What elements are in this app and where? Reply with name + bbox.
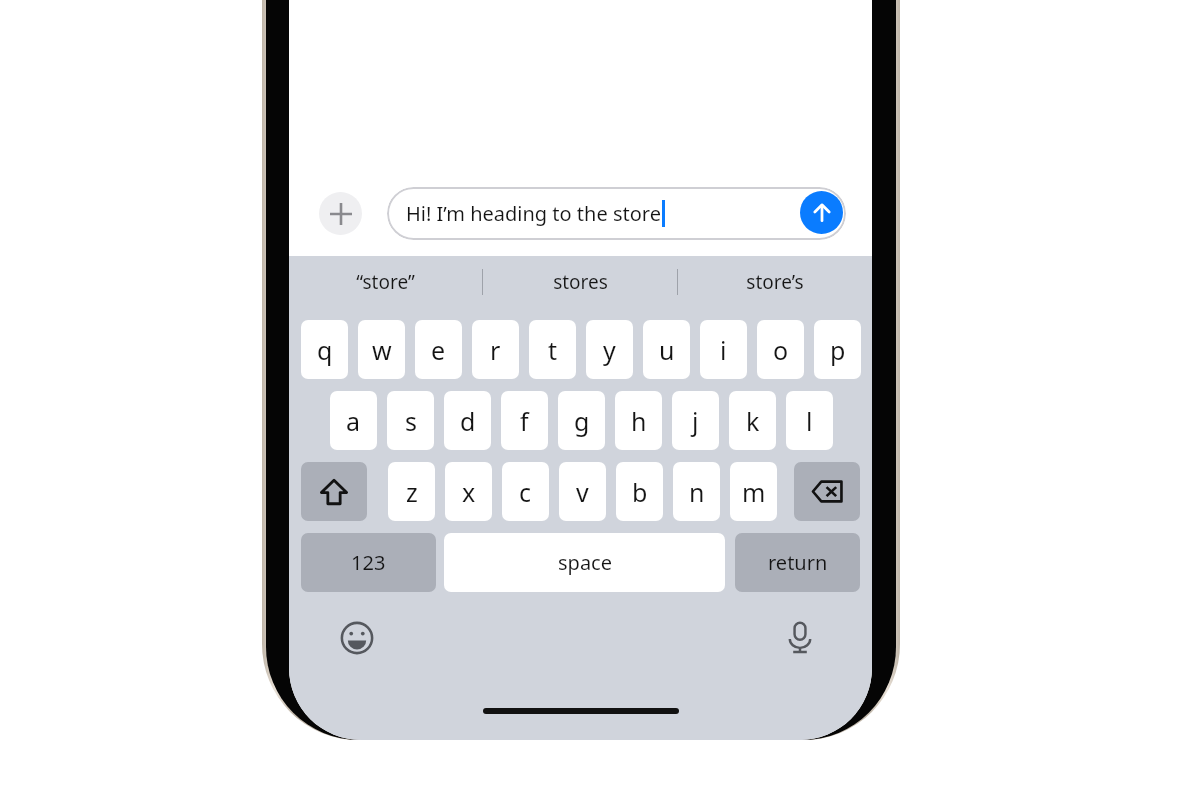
button[interactable]: Dictation	[779, 616, 821, 658]
button[interactable]: j	[672, 391, 719, 450]
button[interactable]: store’s	[678, 256, 872, 308]
staticText: d	[460, 404, 476, 438]
button[interactable]: “store”	[289, 256, 482, 308]
staticText: i	[720, 333, 727, 367]
button[interactable]: t	[529, 320, 576, 379]
staticText: m	[742, 475, 766, 509]
button[interactable]: e	[415, 320, 462, 379]
button[interactable]: z	[388, 462, 435, 521]
button[interactable]: y	[586, 320, 633, 379]
button[interactable]: d	[444, 391, 491, 450]
staticText: r	[490, 333, 501, 367]
button[interactable]: f	[501, 391, 548, 450]
staticText: stores	[553, 269, 608, 295]
button[interactable]: m	[730, 462, 777, 521]
staticText: w	[372, 333, 392, 367]
button[interactable]: p	[814, 320, 861, 379]
staticText: space	[558, 549, 612, 576]
button[interactable]: h	[615, 391, 662, 450]
button[interactable]: v	[559, 462, 606, 521]
staticText: z	[406, 475, 418, 509]
button[interactable]: Hi! I’m heading to the store	[387, 187, 846, 240]
button[interactable]: Add attachment	[319, 192, 362, 235]
button[interactable]: q	[301, 320, 348, 379]
staticText: g	[574, 404, 590, 438]
button[interactable]: b	[616, 462, 663, 521]
button[interactable]: w	[358, 320, 405, 379]
button[interactable]: Send	[800, 191, 843, 234]
button[interactable]: k	[729, 391, 776, 450]
staticText: store’s	[746, 269, 804, 295]
button[interactable]: u	[643, 320, 690, 379]
button[interactable]: space	[444, 533, 725, 592]
staticText: v	[576, 475, 589, 509]
button[interactable]: stores	[483, 256, 677, 308]
staticText: s	[405, 404, 417, 438]
button[interactable]: s	[387, 391, 434, 450]
button[interactable]: g	[558, 391, 605, 450]
button[interactable]: Shift	[301, 462, 367, 521]
staticText: x	[462, 475, 476, 509]
staticText: “store”	[356, 269, 415, 295]
staticText: j	[692, 404, 699, 438]
staticText: return	[768, 549, 828, 576]
button[interactable]: Backspace	[794, 462, 860, 521]
button[interactable]: 123	[301, 533, 436, 592]
staticText: k	[746, 404, 760, 438]
staticText: o	[773, 333, 789, 367]
button[interactable]: r	[472, 320, 519, 379]
staticText: c	[519, 475, 532, 509]
staticText: 123	[351, 549, 386, 576]
staticText: b	[632, 475, 648, 509]
staticText: a	[346, 404, 361, 438]
staticText: u	[659, 333, 675, 367]
staticText: q	[317, 333, 333, 367]
button[interactable]: c	[502, 462, 549, 521]
staticText: p	[830, 333, 846, 367]
staticText: y	[603, 333, 616, 367]
staticText: Hi! I’m heading to the store	[406, 200, 661, 227]
staticText: t	[548, 333, 558, 367]
staticText: f	[520, 404, 529, 438]
button[interactable]: x	[445, 462, 492, 521]
button[interactable]: return	[735, 533, 860, 592]
staticText: n	[689, 475, 705, 509]
button[interactable]: n	[673, 462, 720, 521]
staticText: l	[806, 404, 813, 438]
button[interactable]: l	[786, 391, 833, 450]
button[interactable]: o	[757, 320, 804, 379]
staticText: h	[631, 404, 647, 438]
staticText: e	[431, 333, 446, 367]
button[interactable]: a	[330, 391, 377, 450]
button[interactable]: Emoji keyboard	[337, 618, 377, 658]
button[interactable]: i	[700, 320, 747, 379]
